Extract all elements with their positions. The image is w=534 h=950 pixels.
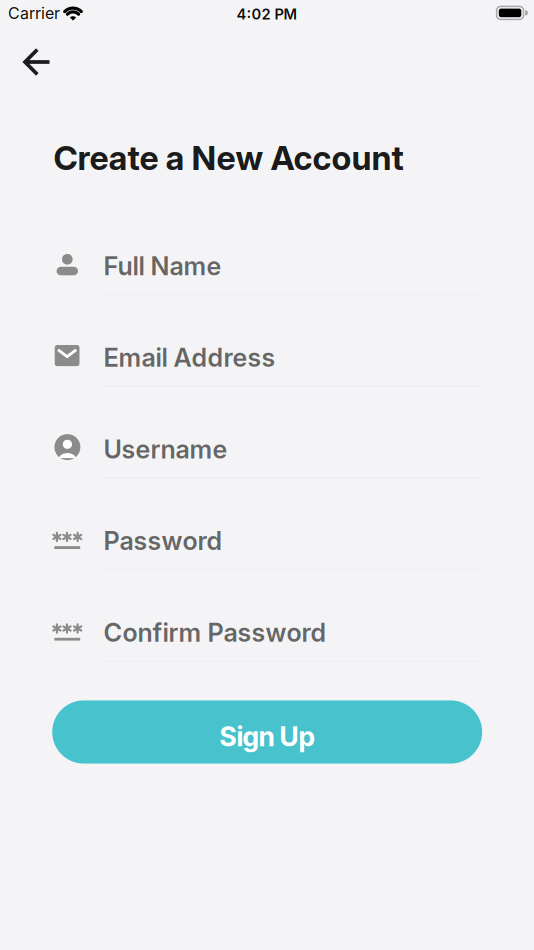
staticText: Sign Up [220,720,315,753]
button[interactable]: Full Name [52,247,483,297]
staticText: Full Name [103,251,221,281]
staticText: Confirm Password [103,617,326,648]
staticText: Carrier [8,3,60,23]
staticText: Email Address [103,342,275,373]
staticText: Username [103,434,227,465]
button[interactable]: Password [52,522,483,572]
button[interactable]: Sign Up [52,700,482,764]
button[interactable]: Email Address [52,339,483,389]
staticText: 4:02 PM [236,5,297,23]
button[interactable]: Back [23,49,51,75]
button[interactable]: Username [52,430,483,480]
staticText: Password [103,525,222,556]
staticText: Create a New Account [53,138,403,178]
button[interactable]: Confirm Password [52,613,483,663]
